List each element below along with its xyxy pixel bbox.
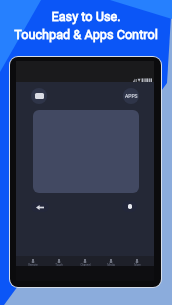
button[interactable]: Back [31, 202, 49, 212]
button[interactable]: APPS [123, 88, 139, 104]
button[interactable]: Home [122, 201, 137, 212]
staticText: Easy to Use. [51, 9, 121, 24]
staticText: More [134, 263, 141, 266]
button[interactable]: More [125, 256, 149, 266]
button[interactable]: Media [99, 256, 123, 266]
button[interactable]: Remote [21, 256, 45, 266]
staticText: Channel [80, 263, 91, 266]
button[interactable]: Touch [47, 256, 71, 266]
staticText: Remote [28, 263, 38, 266]
staticText: Touch [55, 263, 63, 266]
staticText: Touchpad & Apps Control [14, 27, 158, 42]
button[interactable]: Keyboard [31, 88, 47, 104]
staticText: Media [107, 263, 115, 266]
button[interactable]: Channel [73, 256, 97, 266]
staticText: APPS [125, 93, 138, 99]
